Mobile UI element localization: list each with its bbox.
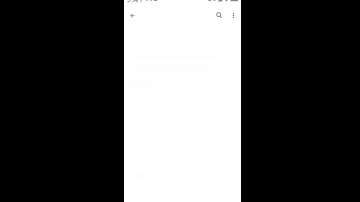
staticText: 9:41 [126, 0, 143, 4]
button[interactable]: More options [228, 5, 239, 26]
button[interactable]: Search [212, 5, 227, 26]
button[interactable]: Back [125, 5, 140, 26]
